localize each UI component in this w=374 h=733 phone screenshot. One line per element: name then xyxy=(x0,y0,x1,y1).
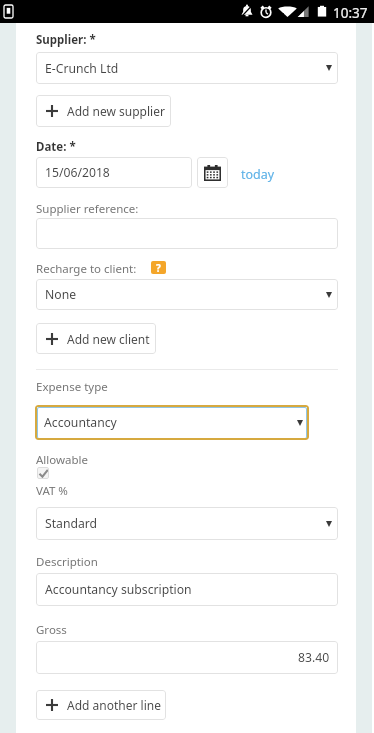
button[interactable]: Allowable xyxy=(37,467,49,479)
button[interactable]: Add new client xyxy=(36,323,156,354)
button[interactable]: Add another line xyxy=(36,690,166,720)
button[interactable]: Pick date xyxy=(197,157,228,188)
staticText: 83.40 xyxy=(298,649,330,666)
button[interactable]: Accountancy subscription xyxy=(36,573,338,606)
staticText: ? xyxy=(156,261,161,274)
staticText: 15/06/2018 xyxy=(45,164,110,181)
staticText: VAT % xyxy=(36,483,68,499)
staticText: Add new supplier xyxy=(67,103,165,119)
button[interactable]: Help xyxy=(151,261,166,274)
staticText: Description xyxy=(36,554,98,570)
staticText: Allowable xyxy=(36,452,89,468)
staticText: Supplier: * xyxy=(36,32,96,48)
staticText: 10:37 xyxy=(333,4,368,22)
staticText: Date: * xyxy=(36,139,76,155)
button[interactable]: E-Crunch Ltd xyxy=(36,52,338,84)
staticText: E-Crunch Ltd xyxy=(45,60,119,77)
staticText: Gross xyxy=(36,622,67,638)
staticText: Add new client xyxy=(67,331,150,347)
button[interactable]: 83.40 xyxy=(36,641,338,674)
button[interactable]: 15/06/2018 xyxy=(36,157,192,188)
button[interactable]: Standard xyxy=(36,507,338,540)
staticText: Recharge to client: xyxy=(36,261,137,277)
button[interactable]: None xyxy=(36,279,338,310)
staticText: Accountancy subscription xyxy=(45,581,192,598)
staticText: Supplier reference: xyxy=(36,201,139,217)
staticText: Expense type xyxy=(36,379,108,395)
button[interactable] xyxy=(36,218,338,249)
button[interactable]: Add new supplier xyxy=(36,95,171,127)
staticText: Add another line xyxy=(67,697,161,713)
staticText: None xyxy=(45,286,77,303)
button[interactable]: Accountancy xyxy=(35,405,309,440)
staticText: Standard xyxy=(45,515,98,532)
staticText: Accountancy xyxy=(44,414,117,431)
button[interactable]: today xyxy=(241,166,275,183)
